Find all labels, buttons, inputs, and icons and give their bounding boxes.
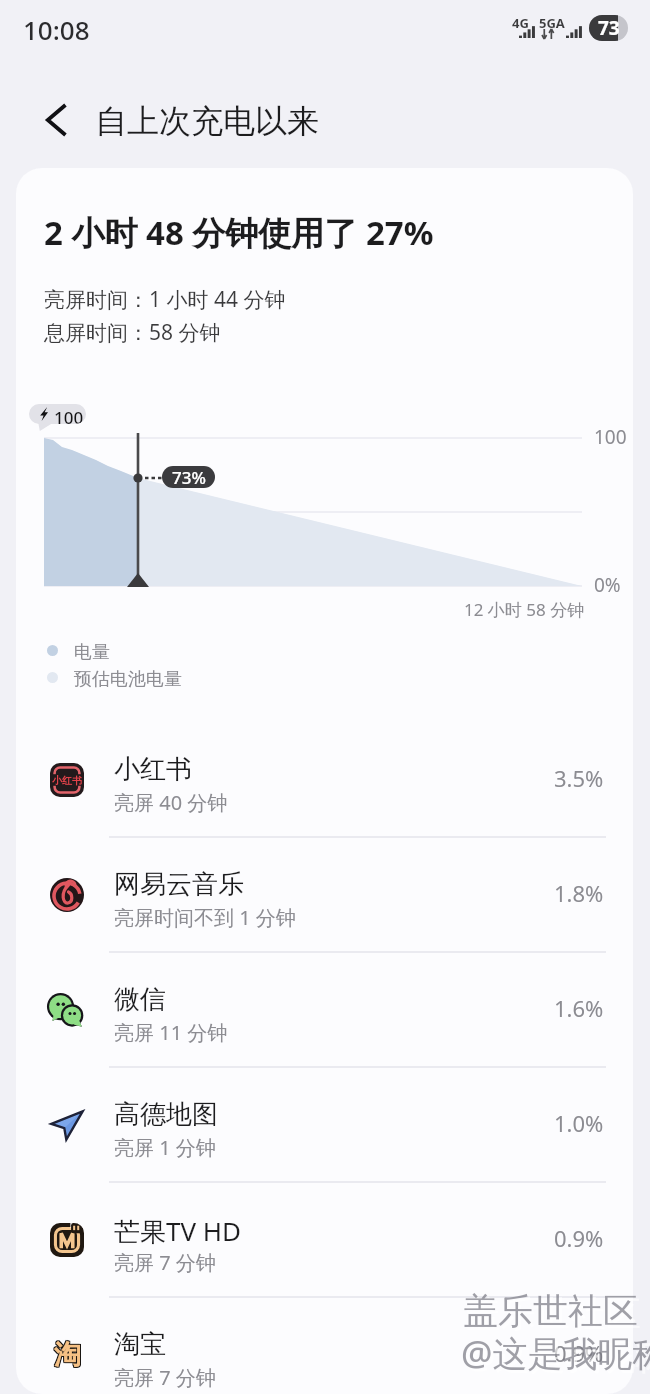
staticText: 淘宝 [114, 1328, 166, 1361]
button[interactable]: 小红书 [16, 740, 633, 855]
staticText: 电量 [74, 641, 110, 664]
staticText: 2 小时 48 分钟使用了 27% [44, 210, 434, 255]
staticText: 自上次充电以来 [95, 101, 319, 141]
staticText: 0.9% [554, 1223, 604, 1253]
staticText: 100 [594, 424, 627, 450]
staticText: 淘 [55, 1339, 82, 1373]
staticText: 亮屏时间不到 1 分钟 [114, 904, 296, 931]
staticText: 4G [512, 14, 529, 32]
staticText: @这是我昵称 [464, 1332, 650, 1380]
button[interactable]: 高德地图 [16, 1085, 633, 1200]
staticText: 淘 [53, 1337, 80, 1371]
staticText: 73% [172, 466, 206, 488]
staticText: 5GA [539, 14, 565, 32]
staticText: 亮屏 1 分钟 [114, 1134, 216, 1161]
staticText: 小红书 [52, 774, 82, 787]
staticText: 3.5% [554, 763, 604, 793]
staticText: 10:08 [23, 12, 90, 47]
staticText: 淘 [54, 1338, 81, 1372]
button[interactable]: 淘 [16, 1315, 633, 1394]
staticText: 网易云音乐 [114, 868, 244, 901]
staticText: 12 小时 58 分钟 [464, 598, 585, 621]
staticText: 小红书 [114, 753, 192, 786]
staticText: 淘 [54, 1337, 81, 1371]
staticText: 1.8% [554, 878, 604, 908]
button[interactable]: 芒果TV HD [16, 1200, 633, 1315]
staticText: 0% [594, 572, 621, 598]
staticText: 0.9% [554, 1338, 604, 1368]
staticText: 盖乐世社区 [466, 1292, 641, 1336]
staticText: 息屏时间：58 分钟 [44, 318, 221, 347]
button[interactable]: 网易云音乐 [16, 855, 633, 970]
staticText: 100 [54, 406, 84, 424]
staticText: 淘 [53, 1339, 80, 1373]
staticText: 淘 [53, 1338, 80, 1372]
staticText: 1.6% [554, 993, 604, 1023]
staticText: 亮屏时间：1 小时 44 分钟 [44, 285, 286, 314]
staticText: 淘 [54, 1339, 81, 1373]
staticText: 盖乐世社区 [463, 1289, 638, 1333]
staticText: 淘 [55, 1338, 82, 1372]
staticText: 73 [598, 15, 620, 41]
staticText: 淘 [55, 1337, 82, 1371]
staticText: 预估电池电量 [74, 668, 182, 691]
staticText: 微信 [114, 983, 166, 1016]
staticText: 芒果TV HD [114, 1213, 242, 1249]
staticText: 亮屏 7 分钟 [114, 1364, 216, 1391]
staticText: 亮屏 7 分钟 [114, 1249, 216, 1276]
button[interactable]: 微信 [16, 970, 633, 1085]
staticText: 高德地图 [114, 1098, 218, 1131]
button[interactable]: Back [22, 87, 88, 153]
staticText: 亮屏 40 分钟 [114, 789, 228, 816]
staticText: 亮屏 11 分钟 [114, 1019, 228, 1046]
staticText: 1.0% [554, 1108, 604, 1138]
staticText: @这是我昵称 [461, 1329, 650, 1377]
